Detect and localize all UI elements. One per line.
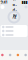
staticText: ▮▮▮ [21, 0, 27, 4]
staticText: 9:41 [0, 0, 7, 5]
staticText: 72 [12, 14, 16, 20]
button[interactable] [22, 50, 28, 60]
button[interactable] [6, 50, 14, 60]
staticText: Today [12, 0, 16, 18]
button[interactable] [0, 50, 6, 60]
button[interactable] [14, 50, 22, 60]
